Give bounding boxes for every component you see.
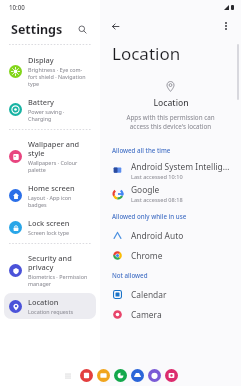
button[interactable]: Camera xyxy=(100,304,241,324)
button[interactable]: Calendar xyxy=(100,284,241,304)
staticText: Battery xyxy=(28,97,54,107)
button[interactable]: Google xyxy=(100,182,241,205)
button[interactable]: Security and privacy xyxy=(4,249,96,291)
button[interactable]: App xyxy=(114,369,127,382)
staticText: Wallpapers · Colour palette xyxy=(28,159,78,173)
button[interactable]: Android Auto xyxy=(100,225,241,245)
staticText: Apps with this permission can access thi… xyxy=(120,113,221,131)
staticText: Lock screen xyxy=(28,218,70,228)
staticText: Home screen xyxy=(28,183,75,193)
staticText: Location xyxy=(112,42,181,65)
button[interactable]: All apps xyxy=(61,369,74,382)
staticText: Location xyxy=(153,97,189,109)
staticText: Last accessed 08:18 xyxy=(131,196,183,204)
staticText: Chrome xyxy=(131,250,163,261)
staticText: Location xyxy=(28,297,59,307)
staticText: Camera xyxy=(131,309,162,320)
staticText: Location requests xyxy=(28,308,73,315)
button[interactable]: App xyxy=(80,369,93,382)
staticText: Power saving · Charging xyxy=(28,108,65,122)
button[interactable]: App xyxy=(131,369,144,382)
staticText: Brightness · Eye com- fort shield · Navi… xyxy=(28,66,86,87)
button[interactable]: Chrome xyxy=(100,245,241,265)
staticText: Not allowed xyxy=(112,271,148,279)
button[interactable]: Home screen xyxy=(4,179,96,212)
staticText: Google xyxy=(131,184,160,195)
button[interactable]: Location xyxy=(4,293,96,319)
button[interactable]: Display xyxy=(4,51,96,91)
button[interactable]: App xyxy=(148,369,161,382)
button[interactable]: App xyxy=(97,369,110,382)
staticText: Layout · App icon badges xyxy=(28,194,72,208)
staticText: Screen lock type xyxy=(28,229,70,236)
button[interactable]: Lock screen xyxy=(4,214,96,240)
button[interactable]: Android System Intellige… xyxy=(100,159,241,182)
staticText: Wallpaper and style xyxy=(28,139,80,158)
button[interactable]: App xyxy=(165,369,178,382)
staticText: Biometrics · Permission manager xyxy=(28,273,88,287)
button[interactable]: Back xyxy=(106,17,124,35)
staticText: Allowed all the time xyxy=(112,146,171,154)
staticText: Display xyxy=(28,55,54,65)
staticText: Android System Intellige… xyxy=(131,161,233,172)
staticText: Last accessed 10:10 xyxy=(131,173,183,181)
staticText: Settings xyxy=(11,21,63,38)
staticText: Calendar xyxy=(131,289,167,300)
staticText: Allowed only while in use xyxy=(112,212,187,220)
button[interactable]: Wallpaper and style xyxy=(4,135,96,177)
staticText: Security and privacy xyxy=(28,253,72,272)
button[interactable]: Battery xyxy=(4,93,96,126)
button[interactable]: Search settings xyxy=(74,21,90,37)
staticText: 10:00 xyxy=(9,3,25,11)
staticText: Android Auto xyxy=(131,230,184,241)
button[interactable]: More options xyxy=(217,17,235,35)
